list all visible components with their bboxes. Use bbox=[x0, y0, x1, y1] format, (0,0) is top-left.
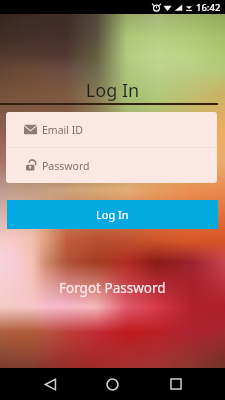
button[interactable]: Forgot Password bbox=[0, 279, 225, 297]
button[interactable]: Password bbox=[6, 148, 217, 183]
staticText: Log In bbox=[96, 207, 129, 222]
staticText: 16:42 bbox=[196, 1, 221, 14]
staticText: Forgot Password bbox=[59, 279, 166, 297]
button[interactable]: Back bbox=[32, 368, 68, 400]
staticText: Log In bbox=[0, 78, 225, 103]
button[interactable]: Home bbox=[94, 368, 130, 400]
button[interactable]: Email ID bbox=[6, 112, 217, 147]
staticText: Password bbox=[42, 159, 90, 173]
staticText: Email ID bbox=[42, 123, 83, 137]
button[interactable]: Log In bbox=[7, 200, 218, 229]
button[interactable]: Recent apps bbox=[158, 368, 194, 400]
